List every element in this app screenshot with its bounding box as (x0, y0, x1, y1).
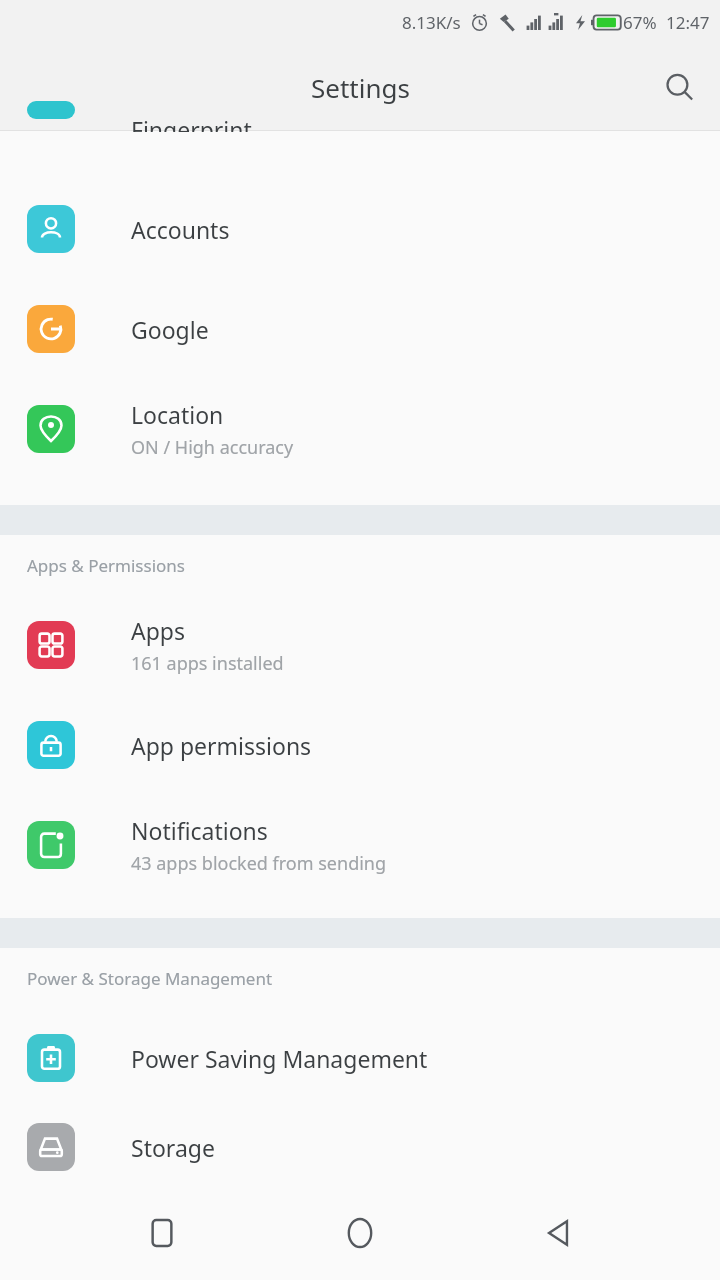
staticText: Apps & Permissions (27, 554, 185, 577)
button[interactable]: Accounts (0, 179, 720, 279)
staticText: ON / High accuracy (131, 435, 294, 460)
button[interactable]: Search (652, 60, 708, 116)
staticText: 8.13K/s (402, 11, 461, 34)
staticText: Notifications (131, 815, 268, 846)
staticText: Storage (131, 1132, 215, 1163)
staticText: Settings (311, 70, 410, 105)
staticText: 161 apps installed (131, 651, 284, 676)
staticText: Google (131, 314, 209, 345)
button[interactable]: App permissions (0, 695, 720, 795)
staticText: Power & Storage Management (27, 967, 273, 990)
staticText: Location (131, 399, 224, 430)
button[interactable]: Apps (0, 595, 720, 695)
button[interactable]: Notifications (0, 795, 720, 895)
staticText: App permissions (131, 730, 312, 761)
button[interactable]: Back (522, 1197, 594, 1269)
staticText: 43 apps blocked from sending (131, 851, 387, 876)
staticText: 12:47 (666, 11, 710, 34)
button[interactable]: Recent apps (126, 1197, 198, 1269)
button[interactable]: Location (0, 379, 720, 479)
staticText: 67% (623, 11, 657, 34)
button[interactable]: Google (0, 279, 720, 379)
button[interactable]: Home (324, 1197, 396, 1269)
button[interactable]: Fingerprint (0, 131, 720, 149)
button[interactable]: Power Saving Management (0, 1008, 720, 1108)
staticText: Fingerprint (131, 114, 252, 132)
staticText: Accounts (131, 214, 230, 245)
button[interactable]: Storage (0, 1108, 720, 1186)
staticText: Power Saving Management (131, 1043, 428, 1074)
staticText: Apps (131, 615, 186, 646)
